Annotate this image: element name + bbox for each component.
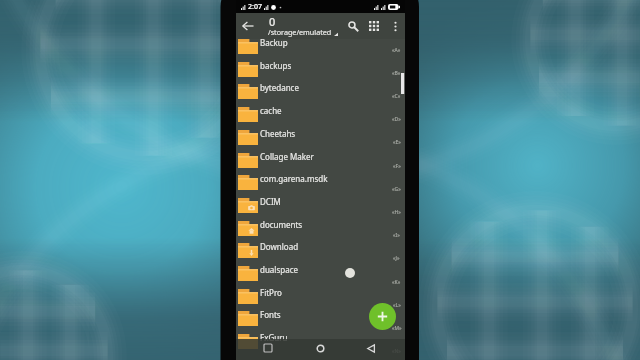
- button[interactable]: com.garena.msdk: [236, 171, 405, 194]
- staticText: «I»: [393, 232, 400, 239]
- button[interactable]: «D»: [389, 115, 404, 123]
- staticText: «N»: [392, 348, 401, 355]
- staticText: cache: [260, 105, 282, 116]
- button[interactable]: Download: [236, 239, 405, 262]
- staticText: 0: [269, 14, 276, 29]
- button[interactable]: More options: [388, 19, 403, 34]
- button[interactable]: Home: [312, 340, 328, 356]
- staticText: dualspace: [260, 264, 299, 275]
- button[interactable]: DCIM: [236, 194, 405, 217]
- button[interactable]: «M»: [389, 324, 404, 332]
- button[interactable]: Search: [342, 15, 364, 37]
- button[interactable]: bytedance: [236, 80, 405, 103]
- button[interactable]: «J»: [389, 254, 404, 262]
- staticText: «C»: [392, 93, 401, 100]
- button[interactable]: Add: [369, 303, 396, 330]
- staticText: «D»: [392, 116, 401, 123]
- staticText: documents: [260, 219, 303, 230]
- staticText: Cheetahs: [260, 128, 296, 139]
- button[interactable]: «H»: [389, 208, 404, 216]
- staticText: Download: [260, 241, 299, 252]
- button[interactable]: documents: [236, 217, 405, 240]
- staticText: «F»: [393, 163, 401, 170]
- button[interactable]: Backup: [236, 35, 405, 58]
- button[interactable]: «B»: [389, 69, 404, 77]
- button[interactable]: Back: [363, 340, 379, 356]
- button[interactable]: «E»: [389, 138, 404, 146]
- staticText: «J»: [393, 255, 400, 262]
- staticText: «M»: [392, 325, 402, 332]
- staticText: «E»: [393, 139, 401, 146]
- staticText: «L»: [393, 302, 401, 309]
- button[interactable]: Collage Maker: [236, 149, 405, 172]
- staticText: com.garena.msdk: [260, 173, 328, 184]
- button[interactable]: Recent apps: [260, 340, 276, 356]
- button[interactable]: backups: [236, 58, 405, 81]
- staticText: «B»: [392, 70, 401, 77]
- staticText: bytedance: [260, 82, 299, 93]
- staticText: «G»: [392, 186, 401, 193]
- staticText: FitPro: [260, 287, 282, 298]
- staticText: «H»: [392, 209, 401, 216]
- staticText: «A»: [392, 47, 401, 54]
- staticText: FxGuru: [260, 332, 288, 343]
- button[interactable]: «N»: [389, 347, 404, 355]
- button[interactable]: «F»: [389, 162, 404, 170]
- button[interactable]: dualspace: [236, 262, 405, 285]
- button[interactable]: «C»: [389, 92, 404, 100]
- button[interactable]: Grid view: [368, 20, 379, 31]
- staticText: «K»: [392, 279, 401, 286]
- button[interactable]: «L»: [389, 301, 404, 309]
- button[interactable]: «A»: [389, 46, 404, 54]
- button[interactable]: Fonts: [236, 307, 405, 330]
- button[interactable]: «G»: [389, 185, 404, 193]
- button[interactable]: FxGuru: [236, 330, 405, 353]
- button[interactable]: «K»: [389, 278, 404, 286]
- button[interactable]: Navigate up: [237, 15, 258, 36]
- button[interactable]: «I»: [389, 231, 404, 239]
- staticText: 2:07: [248, 2, 262, 12]
- button[interactable]: FitPro: [236, 285, 405, 308]
- staticText: Backup: [260, 37, 288, 48]
- staticText: /storage/emulated: [268, 27, 332, 37]
- staticText: DCIM: [260, 196, 281, 207]
- staticText: Fonts: [260, 309, 281, 320]
- staticText: Collage Maker: [260, 151, 314, 162]
- staticText: backups: [260, 60, 292, 71]
- button[interactable]: Cheetahs: [236, 126, 405, 149]
- button[interactable]: cache: [236, 103, 405, 126]
